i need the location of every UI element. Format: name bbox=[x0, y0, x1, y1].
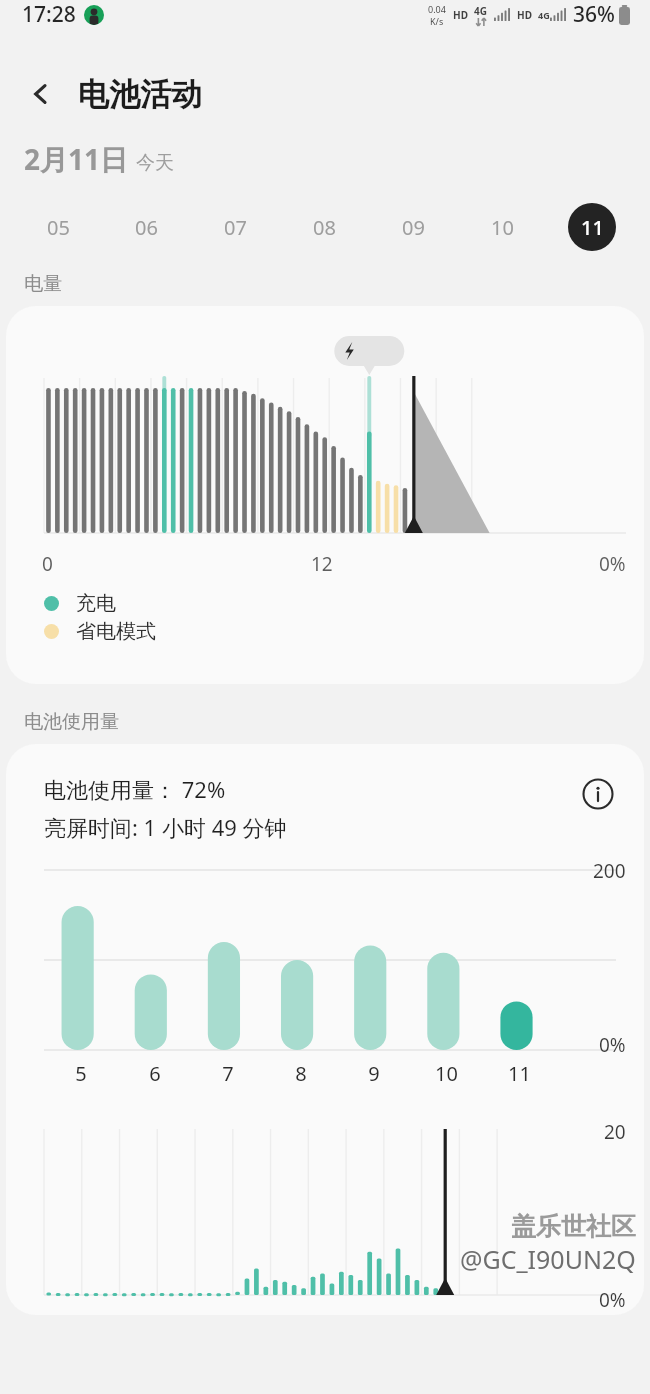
staticText: HD bbox=[517, 8, 532, 22]
staticText: 0.04 bbox=[428, 3, 446, 15]
staticText: 12 bbox=[311, 551, 333, 577]
staticText: 盖乐世社区 bbox=[511, 1211, 636, 1242]
staticText: 0% bbox=[599, 1287, 626, 1313]
staticText: 05 bbox=[47, 214, 70, 241]
staticText: 4G bbox=[474, 4, 487, 18]
staticText: 亮屏时间: 1 小时 49 分钟 bbox=[44, 812, 287, 842]
button[interactable]: 0 bbox=[6, 306, 644, 684]
button[interactable]: 06 bbox=[102, 200, 191, 254]
staticText: 17:28 bbox=[22, 0, 76, 29]
staticText: 10 bbox=[491, 214, 514, 241]
staticText: 7 bbox=[222, 1060, 234, 1087]
staticText: 电池活动 bbox=[78, 75, 202, 114]
staticText: 省电模式 bbox=[76, 619, 156, 644]
staticText: 电池使用量： 72% bbox=[44, 774, 226, 804]
staticText: 07 bbox=[224, 214, 247, 241]
staticText: 36% bbox=[573, 0, 615, 29]
staticText: @GC_I90UN2Q bbox=[460, 1242, 636, 1276]
staticText: 0% bbox=[599, 1032, 626, 1058]
staticText: 11 bbox=[508, 1060, 531, 1087]
staticText: 06 bbox=[135, 214, 158, 241]
staticText: 08 bbox=[313, 214, 336, 241]
staticText: 8 bbox=[295, 1060, 307, 1087]
staticText: HD bbox=[453, 8, 468, 22]
staticText: 5 bbox=[75, 1060, 87, 1087]
button[interactable]: 07 bbox=[191, 200, 280, 254]
button[interactable]: 10 bbox=[458, 200, 547, 254]
staticText: 电池使用量 bbox=[24, 710, 119, 734]
staticText: 0% bbox=[599, 551, 626, 577]
staticText: 6 bbox=[149, 1060, 161, 1087]
staticText: 10 bbox=[435, 1060, 458, 1087]
staticText: 200 bbox=[593, 858, 626, 884]
button[interactable]: 05 bbox=[14, 200, 102, 254]
button[interactable]: 08 bbox=[280, 200, 369, 254]
button[interactable]: Back bbox=[14, 67, 68, 121]
staticText: 09 bbox=[402, 214, 425, 241]
staticText: 今天 bbox=[136, 151, 174, 175]
staticText: 9 bbox=[368, 1060, 380, 1087]
button[interactable]: 09 bbox=[369, 200, 458, 254]
staticText: 电量 bbox=[24, 272, 62, 296]
staticText: 2月11日 bbox=[24, 140, 129, 178]
staticText: 20 bbox=[604, 1119, 626, 1145]
button[interactable]: Info bbox=[578, 774, 618, 814]
staticText: 11 bbox=[581, 214, 604, 241]
button[interactable]: 11 bbox=[547, 200, 636, 254]
staticText: 充电 bbox=[76, 591, 116, 616]
staticText: 4G bbox=[538, 9, 550, 21]
staticText: 0 bbox=[42, 551, 53, 577]
staticText: K/s bbox=[430, 15, 444, 27]
